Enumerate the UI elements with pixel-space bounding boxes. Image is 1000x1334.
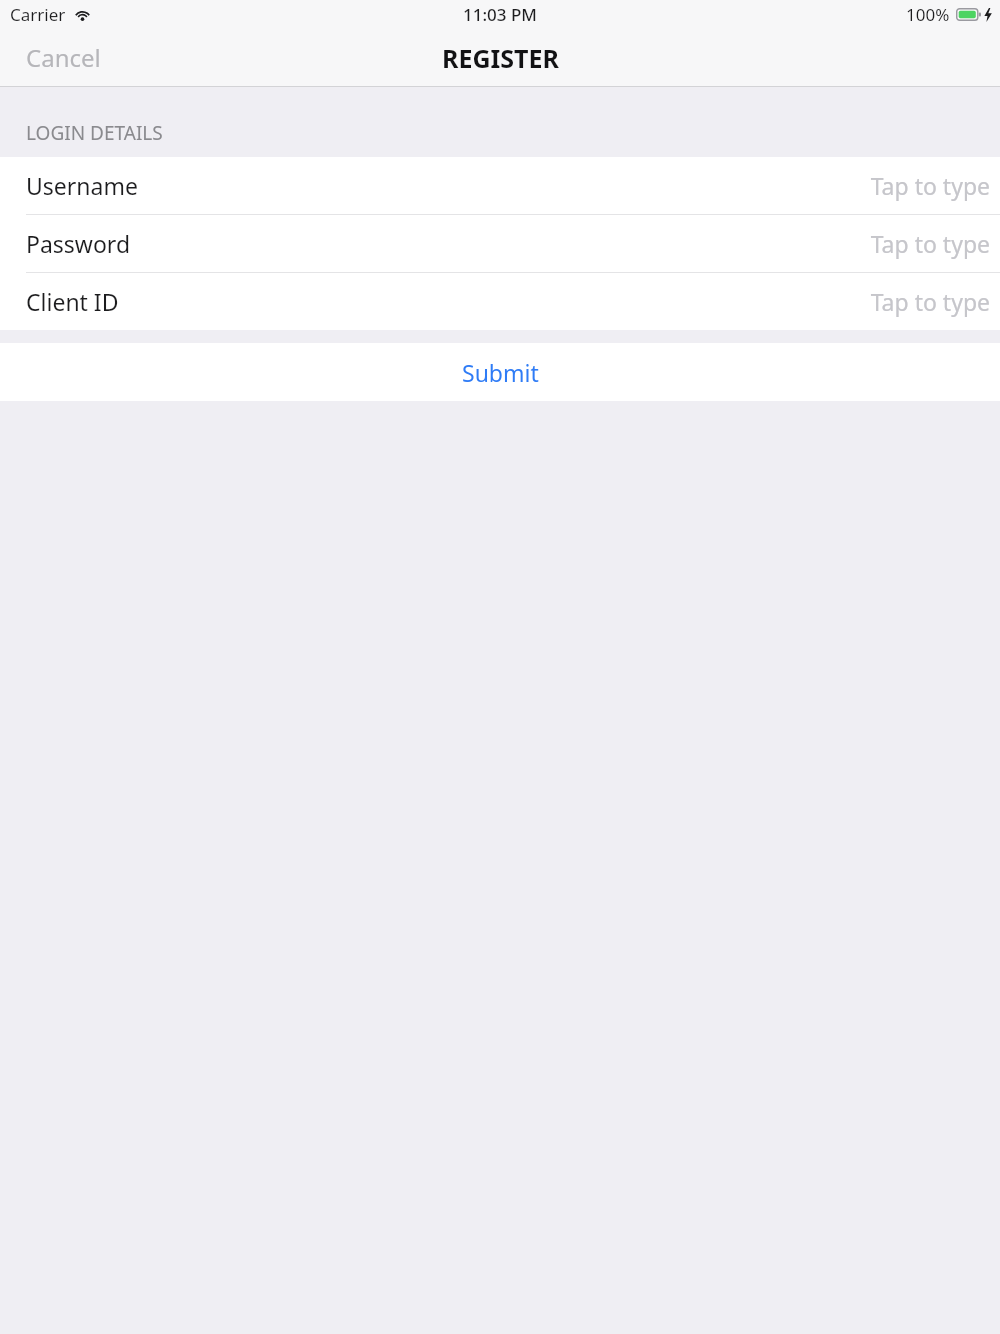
staticText: Tap to type [870,286,990,317]
staticText: 11:03 PM [463,3,537,26]
staticText: Client ID [26,286,119,317]
staticText: Submit [462,357,539,388]
staticText: Username [26,170,138,201]
staticText: Carrier [10,3,66,26]
staticText: LOGIN DETAILS [26,120,163,146]
staticText: Cancel [26,41,101,74]
button[interactable]: Cancel [0,29,127,86]
staticText: Tap to type [870,228,990,259]
staticText: Tap to type [870,170,990,201]
button[interactable]: Client ID [0,273,1000,330]
staticText: 100% [906,3,950,26]
staticText: REGISTER [442,41,559,75]
button[interactable]: Submit [0,343,1000,401]
button[interactable]: Username [0,157,1000,214]
button[interactable]: Password [0,215,1000,272]
staticText: Password [26,228,131,259]
